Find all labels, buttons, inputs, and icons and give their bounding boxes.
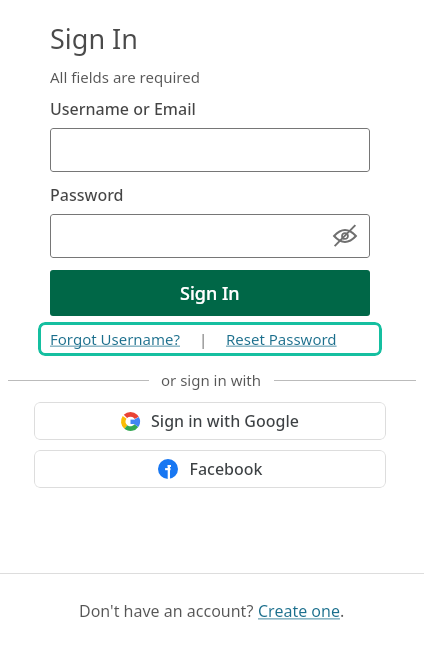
- staticText: .: [340, 600, 345, 622]
- staticText: Password: [50, 184, 124, 206]
- staticText: Don't have an account?: [79, 600, 258, 622]
- staticText: Facebook: [189, 458, 263, 480]
- button[interactable]: Facebook: [34, 450, 386, 488]
- staticText: or sign in with: [161, 370, 262, 390]
- staticText: Sign In: [50, 20, 138, 57]
- staticText: Username or Email: [50, 98, 196, 120]
- staticText: |: [199, 329, 208, 349]
- button[interactable]: Reset Password: [226, 329, 337, 349]
- button[interactable]: Sign In: [50, 270, 370, 316]
- staticText: Sign in with Google: [151, 410, 299, 432]
- button[interactable]: [50, 128, 370, 172]
- staticText: Reset Password: [226, 329, 337, 349]
- staticText: Forgot Username?: [50, 329, 181, 349]
- staticText: All fields are required: [50, 67, 200, 87]
- staticText: Sign In: [180, 281, 240, 306]
- button[interactable]: Create one: [258, 600, 340, 622]
- button[interactable]: Show password: [328, 219, 362, 253]
- button[interactable]: Sign in with Google: [34, 402, 386, 440]
- button[interactable]: Forgot Username?: [50, 329, 181, 349]
- staticText: Create one: [258, 600, 340, 622]
